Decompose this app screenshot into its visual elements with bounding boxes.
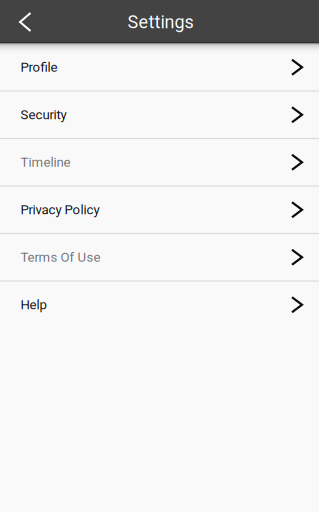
button[interactable]: Timeline bbox=[0, 139, 319, 185]
button[interactable]: Back bbox=[0, 0, 45, 42]
staticText: Settings bbox=[127, 11, 193, 33]
staticText: Timeline bbox=[20, 154, 70, 170]
button[interactable]: Help bbox=[0, 282, 319, 328]
button[interactable]: Security bbox=[0, 92, 319, 138]
button[interactable]: Privacy Policy bbox=[0, 187, 319, 233]
staticText: Privacy Policy bbox=[20, 202, 99, 217]
staticText: Security bbox=[20, 107, 66, 122]
button[interactable]: Terms Of Use bbox=[0, 234, 319, 280]
staticText: Help bbox=[20, 297, 46, 312]
staticText: Profile bbox=[20, 59, 57, 75]
navigationBar: Settings bbox=[0, 0, 319, 42]
staticText: Terms Of Use bbox=[20, 249, 100, 265]
button[interactable]: Profile bbox=[0, 44, 319, 90]
